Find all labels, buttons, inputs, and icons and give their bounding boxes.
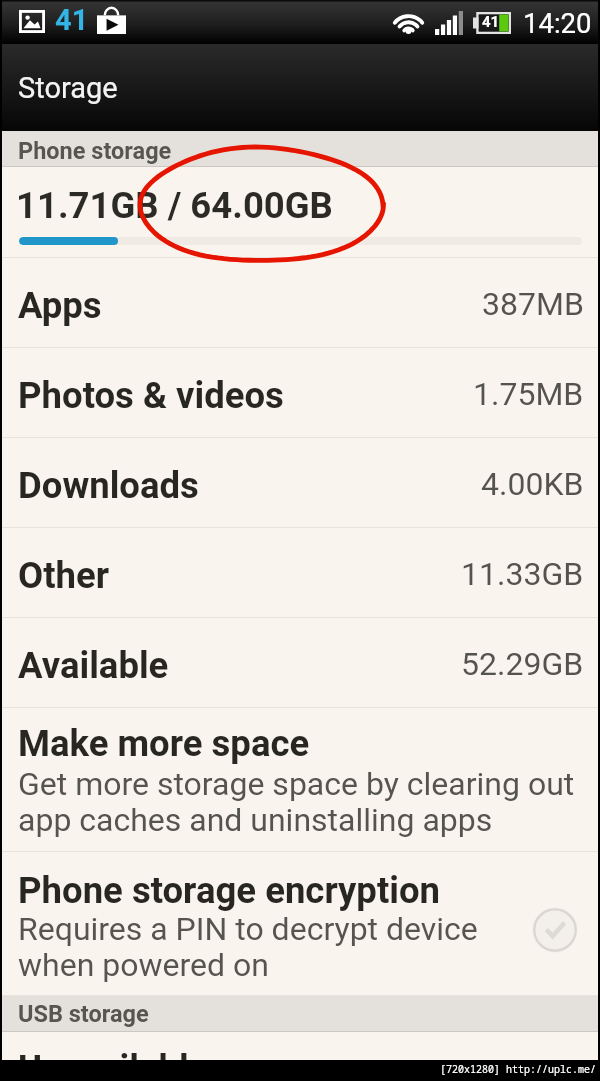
button[interactable]: Apps bbox=[0, 258, 600, 347]
staticText: 4.00KB bbox=[481, 465, 584, 503]
staticText: 1.75MB bbox=[473, 375, 584, 413]
staticText: 52.29GB bbox=[461, 645, 584, 683]
staticText: Phone storage encryption bbox=[18, 869, 441, 912]
button[interactable]: Available bbox=[0, 618, 600, 707]
staticText: Make more space bbox=[18, 722, 310, 765]
staticText: Get more storage space by clearing out a… bbox=[18, 765, 575, 839]
button[interactable]: Other bbox=[0, 528, 600, 617]
button[interactable]: Make more space bbox=[0, 708, 600, 851]
other: Battery 41 percent bbox=[473, 12, 511, 34]
staticText: Downloads bbox=[18, 464, 199, 507]
staticText: Available bbox=[18, 644, 169, 687]
button[interactable]: Phone storage encryption bbox=[0, 852, 600, 995]
button[interactable]: Encryption enabled indicator bbox=[532, 907, 578, 953]
staticText: 41 bbox=[55, 3, 89, 37]
button[interactable]: Downloads bbox=[0, 438, 600, 527]
staticText: Phone storage bbox=[18, 137, 172, 165]
staticText: 387MB bbox=[482, 285, 584, 323]
staticText: Other bbox=[18, 554, 110, 597]
staticText: Apps bbox=[18, 284, 102, 327]
staticText: 41 bbox=[482, 13, 500, 31]
staticText: Unavailable bbox=[18, 1047, 209, 1075]
staticText: 11.71GB / 64.00GB bbox=[16, 184, 333, 227]
staticText: [720x1280] http://uplc.me/ bbox=[440, 1062, 596, 1076]
staticText: 14:20 bbox=[523, 7, 592, 39]
staticText: Photos & videos bbox=[18, 374, 284, 417]
staticText: 11.33GB bbox=[461, 555, 584, 593]
staticText: Requires a PIN to decrypt device when po… bbox=[18, 910, 478, 984]
staticText: Storage bbox=[18, 71, 118, 105]
staticText: USB storage bbox=[18, 1000, 149, 1028]
button[interactable]: Photos & videos bbox=[0, 348, 600, 437]
